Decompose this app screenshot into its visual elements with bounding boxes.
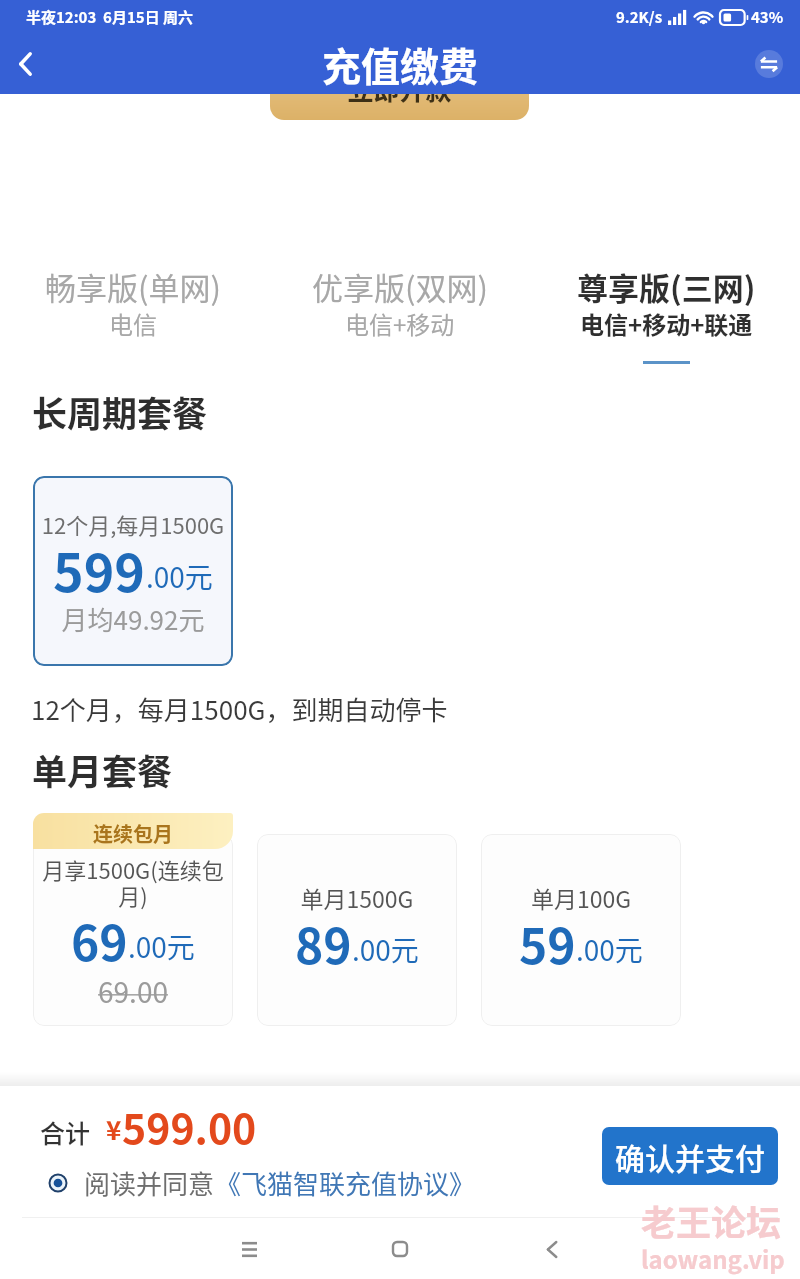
staticText: 单月套餐: [32, 744, 173, 795]
staticText: 立即开款: [270, 70, 529, 108]
staticText: 单月100G: [481, 881, 681, 914]
staticText: 电信+移动+联通: [580, 306, 753, 341]
staticText: 《飞猫智联充值协议》: [215, 1164, 476, 1202]
staticText: .00元: [128, 926, 195, 967]
button[interactable]: 12个月,每月1500G: [33, 476, 233, 666]
staticText: 9.2K/s: [616, 6, 663, 28]
staticText: 电信+移动: [345, 306, 455, 341]
button[interactable]: 优享版(双网): [266, 264, 533, 361]
button[interactable]: 阅读并同意: [48, 1164, 476, 1202]
button[interactable]: 畅享版(单网): [0, 264, 266, 361]
staticText: 89: [295, 908, 352, 978]
staticText: 优享版(双网): [312, 264, 488, 309]
staticText: 老王论坛: [641, 1195, 782, 1246]
button[interactable]: [33, 834, 233, 1026]
staticText: 长周期套餐: [32, 386, 208, 437]
staticText: 69.00: [33, 971, 233, 1012]
staticText: ¥: [106, 1110, 122, 1148]
staticText: 月均49.92元: [33, 600, 233, 638]
button[interactable]: 确认并支付: [602, 1127, 778, 1185]
staticText: 连续包月: [93, 819, 173, 848]
staticText: 单月1500G: [257, 881, 457, 914]
staticText: laowang.vip: [641, 1241, 785, 1276]
button[interactable]: Switch: [755, 50, 783, 78]
staticText: 合计: [40, 1114, 91, 1150]
staticText: 充值缴费: [322, 36, 479, 92]
button[interactable]: Recent apps: [209, 1218, 289, 1279]
staticText: 尊享版(三网): [577, 264, 756, 309]
button[interactable]: 单月100G: [481, 834, 681, 1026]
staticText: 12个月,每月1500G: [33, 508, 233, 540]
staticText: 69: [71, 905, 128, 975]
button[interactable]: 单月1500G: [257, 834, 457, 1026]
staticText: 电信: [109, 306, 157, 341]
staticText: .00元: [576, 929, 643, 970]
staticText: 阅读并同意: [84, 1164, 215, 1202]
button[interactable]: Back: [511, 1218, 591, 1279]
staticText: .00元: [146, 556, 213, 597]
staticText: 畅享版(单网): [45, 264, 221, 309]
button[interactable]: Back: [4, 42, 48, 86]
button[interactable]: [270, 54, 529, 120]
staticText: 确认并支付: [615, 1135, 765, 1178]
button[interactable]: 尊享版(三网): [533, 264, 800, 364]
staticText: 月享1500G(连续包月): [35, 853, 231, 911]
staticText: 12个月，每月1500G，到期自动停卡: [31, 690, 448, 728]
staticText: .00元: [352, 929, 419, 970]
staticText: 半夜12:03 6月15日 周六: [26, 6, 194, 28]
staticText: 599.00: [122, 1096, 257, 1155]
staticText: 599: [53, 532, 146, 607]
button[interactable]: Home: [360, 1218, 440, 1279]
staticText: 59: [519, 908, 576, 978]
staticText: 43%: [751, 6, 784, 28]
